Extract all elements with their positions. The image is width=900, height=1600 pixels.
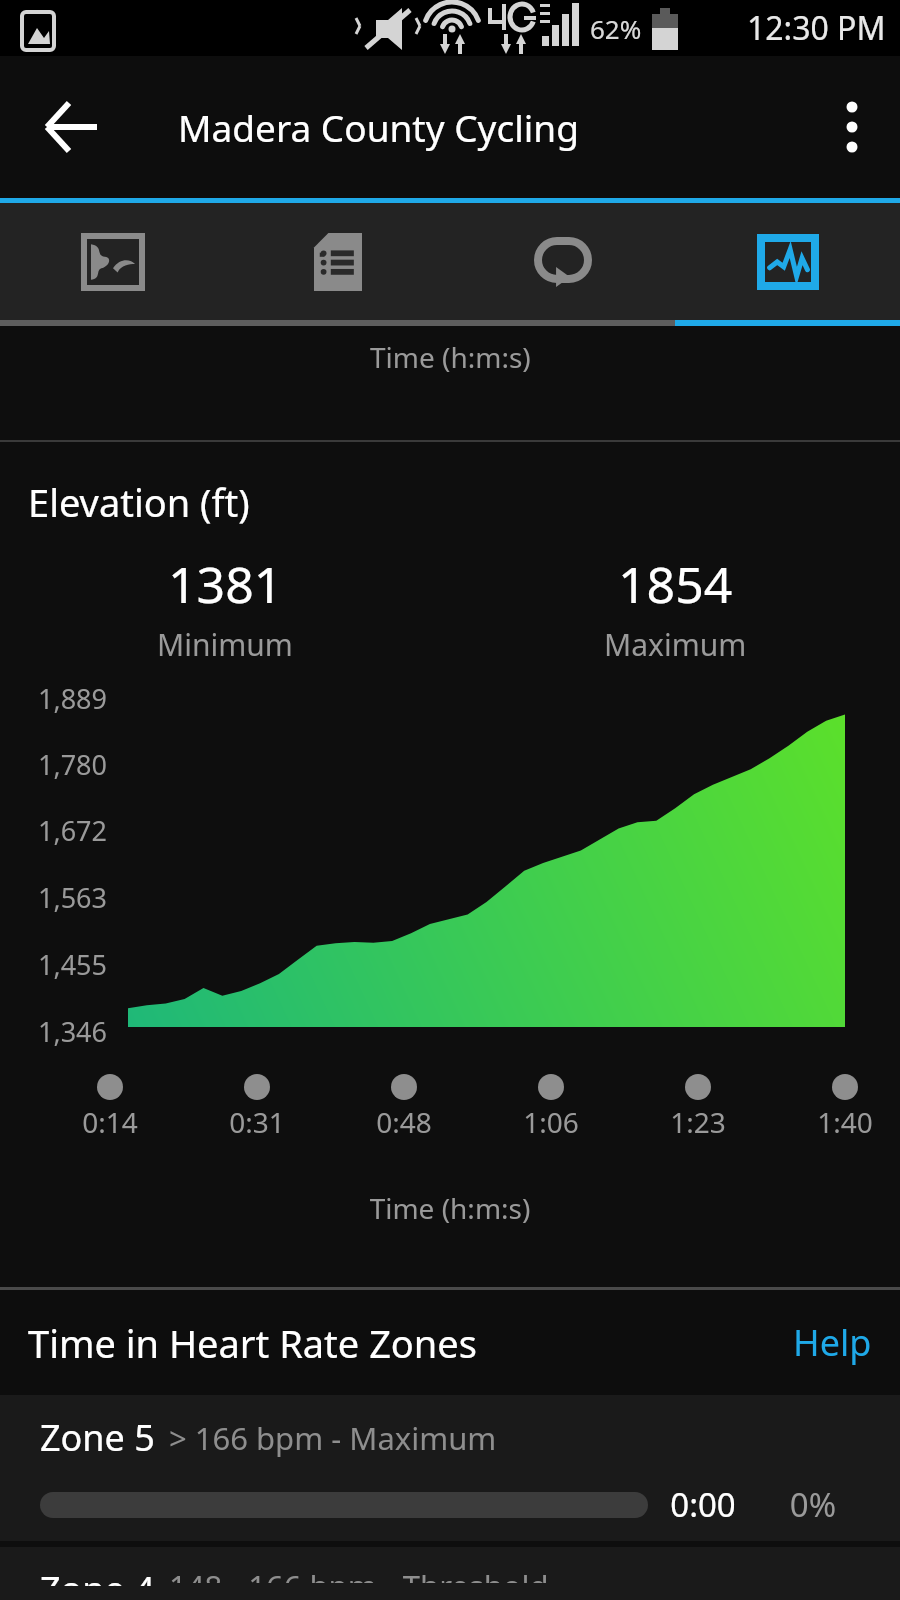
staticText: Time (h:m:s) bbox=[0, 1189, 900, 1227]
staticText: 1,672 bbox=[38, 812, 108, 849]
staticText: 1381 bbox=[168, 550, 283, 618]
staticText: 0:14 bbox=[60, 1103, 160, 1141]
button[interactable]: Map bbox=[0, 203, 225, 320]
staticText: 0:31 bbox=[207, 1103, 307, 1141]
staticText: 12:30 PM bbox=[747, 6, 886, 50]
staticText: Minimum bbox=[157, 624, 293, 665]
staticText: 1:06 bbox=[501, 1103, 601, 1141]
button[interactable]: Laps bbox=[450, 203, 675, 320]
staticText: 1,346 bbox=[38, 1013, 108, 1050]
staticText: 0:48 bbox=[354, 1103, 454, 1141]
button[interactable]: Zone 4 bbox=[0, 1547, 900, 1600]
staticText: 1,780 bbox=[38, 746, 108, 783]
staticText: Zone 5 bbox=[40, 1413, 155, 1462]
staticText: Maximum bbox=[604, 624, 747, 665]
button[interactable]: Back bbox=[22, 79, 118, 175]
staticText: 1,563 bbox=[38, 879, 108, 916]
staticText: Zone 4 bbox=[40, 1565, 155, 1586]
staticText: 0:00 bbox=[648, 1482, 758, 1527]
button[interactable]: Summary bbox=[225, 203, 450, 320]
staticText: 1:23 bbox=[648, 1103, 748, 1141]
staticText: Help bbox=[793, 1318, 872, 1367]
button[interactable]: More options bbox=[804, 79, 900, 175]
staticText: 1854 bbox=[618, 550, 733, 618]
staticText: 148 - 166 bpm - Threshold bbox=[169, 1565, 549, 1583]
staticText: Elevation (ft) bbox=[28, 476, 250, 528]
staticText: Madera County Cycling bbox=[178, 102, 579, 152]
staticText: > 166 bpm - Maximum bbox=[169, 1417, 497, 1459]
staticText: Time (h:m:s) bbox=[370, 338, 531, 376]
button[interactable]: Help bbox=[783, 1310, 882, 1375]
button[interactable]: Charts bbox=[675, 203, 900, 320]
staticText: 1:40 bbox=[795, 1103, 895, 1141]
staticText: 62% bbox=[590, 11, 642, 46]
staticText: 1,455 bbox=[38, 946, 108, 983]
staticText: 1,889 bbox=[38, 680, 108, 717]
button[interactable]: Zone 5 bbox=[0, 1395, 900, 1541]
staticText: 0% bbox=[758, 1482, 868, 1527]
staticText: Time in Heart Rate Zones bbox=[28, 1317, 477, 1369]
